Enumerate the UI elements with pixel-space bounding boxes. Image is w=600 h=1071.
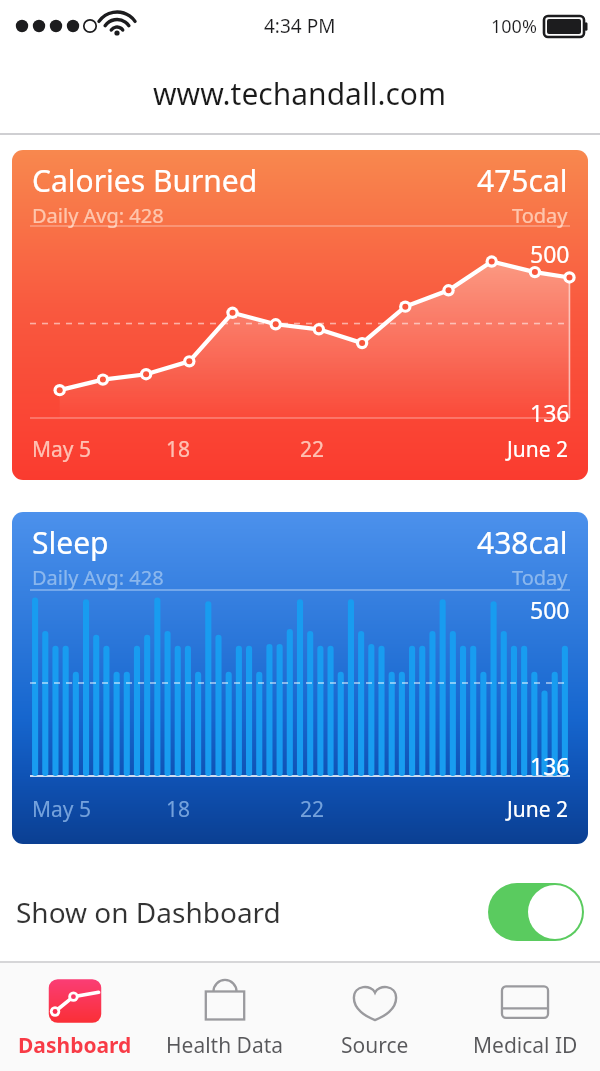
- staticText: 500: [530, 238, 570, 269]
- staticText: May 5: [32, 795, 166, 824]
- staticText: 136: [530, 397, 570, 428]
- staticText: Show on Dashboard: [16, 893, 281, 931]
- staticText: Today: [512, 202, 568, 229]
- staticText: Daily Avg: 428: [32, 564, 164, 591]
- button[interactable]: Dashboard: [0, 963, 150, 1071]
- staticText: Health Data: [166, 1031, 284, 1060]
- staticText: Medical ID: [473, 1031, 578, 1060]
- staticText: Calories Burned: [32, 160, 258, 201]
- button[interactable]: Source: [300, 963, 450, 1071]
- button[interactable]: Calories Burned: [12, 150, 588, 480]
- staticText: June 2: [434, 795, 568, 824]
- staticText: 18: [166, 435, 300, 464]
- other: Health Data: [193, 973, 257, 1029]
- staticText: Sleep: [32, 522, 109, 563]
- staticText: 438cal: [477, 522, 568, 563]
- button[interactable]: Show on Dashboard toggle: [488, 883, 584, 941]
- other: Medical ID: [493, 973, 557, 1029]
- staticText: 136: [530, 750, 570, 781]
- button[interactable]: Medical ID: [450, 963, 600, 1071]
- staticText: Today: [512, 564, 568, 591]
- button[interactable]: Health Data: [150, 963, 300, 1071]
- button[interactable]: Show on Dashboard: [0, 860, 600, 963]
- staticText: Daily Avg: 428: [32, 202, 164, 229]
- other: Dashboard: [43, 973, 107, 1029]
- staticText: www.techandall.com: [153, 73, 447, 114]
- staticText: Dashboard: [18, 1031, 132, 1060]
- staticText: 100%: [491, 14, 537, 39]
- staticText: 4:34 PM: [264, 13, 336, 39]
- button[interactable]: Sleep: [12, 512, 588, 844]
- staticText: 475cal: [477, 160, 568, 201]
- staticText: 500: [530, 594, 570, 625]
- other: Source: [343, 973, 407, 1029]
- staticText: Source: [341, 1031, 409, 1060]
- staticText: 22: [300, 435, 434, 464]
- staticText: May 5: [32, 435, 166, 464]
- staticText: 18: [166, 795, 300, 824]
- staticText: June 2: [434, 435, 568, 464]
- staticText: 22: [300, 795, 434, 824]
